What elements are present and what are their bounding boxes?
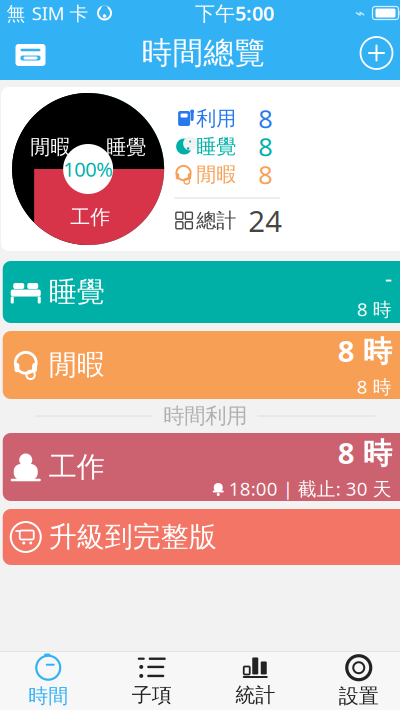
button[interactable]: 閒暇 bbox=[3, 331, 400, 399]
staticText: 8 bbox=[258, 130, 272, 163]
staticText: 18:00 | 截止: 30 天 bbox=[229, 476, 392, 501]
staticText: 時間總覽 bbox=[141, 34, 265, 72]
staticText: 8 時 bbox=[338, 433, 392, 472]
staticText: ⌁ bbox=[354, 3, 364, 23]
button[interactable]: 睡覺 bbox=[3, 261, 400, 323]
button[interactable]: 子項 bbox=[100, 652, 203, 710]
staticText: 時間利用 bbox=[163, 403, 247, 429]
staticText: 統計 bbox=[235, 683, 275, 707]
staticText: 8 bbox=[258, 102, 272, 135]
staticText: 睡覺 bbox=[106, 135, 146, 159]
staticText: 閒暇 bbox=[196, 162, 236, 187]
staticText: 設置 bbox=[339, 684, 379, 708]
staticText: 100% bbox=[63, 156, 113, 182]
staticText: 時間 bbox=[28, 684, 68, 708]
staticText: 工作 bbox=[49, 450, 105, 484]
staticText: 工作 bbox=[70, 205, 110, 229]
staticText: 24 bbox=[248, 201, 282, 240]
staticText: - bbox=[385, 263, 392, 293]
button[interactable]: 新增 bbox=[354, 31, 398, 75]
staticText: 8 時 bbox=[357, 374, 392, 399]
staticText: 閒暇 bbox=[49, 348, 105, 382]
staticText: 8 時 bbox=[338, 331, 392, 370]
staticText: 升級到完整版 bbox=[49, 520, 217, 554]
button[interactable]: 升級到完整版 bbox=[3, 509, 400, 565]
staticText: 總計 bbox=[196, 208, 236, 233]
button[interactable]: 時間 bbox=[0, 652, 100, 710]
button[interactable]: 封存 bbox=[8, 31, 52, 75]
staticText: 子項 bbox=[132, 683, 172, 707]
staticText: 無 SIM 卡 bbox=[6, 1, 88, 25]
staticText: 閒暇 bbox=[30, 135, 70, 159]
staticText: 睡覺 bbox=[49, 275, 105, 309]
staticText: 8 時 bbox=[357, 297, 392, 321]
staticText: 利用 bbox=[196, 106, 236, 131]
staticText: 下午5:00 bbox=[195, 0, 274, 26]
button[interactable]: 工作 bbox=[3, 433, 400, 501]
button[interactable]: 統計 bbox=[203, 652, 307, 710]
staticText: 8 bbox=[258, 158, 272, 191]
button[interactable]: 設置 bbox=[307, 652, 400, 710]
staticText: 睡覺 bbox=[196, 134, 236, 159]
